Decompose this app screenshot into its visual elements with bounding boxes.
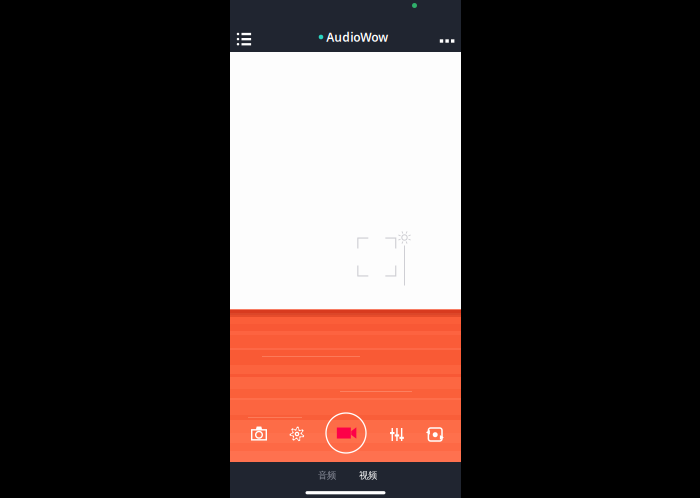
button[interactable]: 音频 — [313, 468, 341, 483]
button[interactable]: Menu — [231, 22, 257, 48]
staticText: 视频 — [359, 470, 377, 481]
button[interactable]: 视频 — [354, 468, 382, 483]
staticText: 音频 — [318, 470, 336, 481]
button[interactable]: Settings — [283, 412, 315, 454]
button[interactable]: Photo mode — [242, 412, 274, 454]
button[interactable]: Record — [325, 412, 367, 454]
button[interactable]: More options — [434, 22, 460, 48]
button[interactable]: Switch camera — [418, 412, 450, 454]
staticText: AudioWow — [326, 29, 388, 45]
button[interactable]: Adjustments — [376, 412, 408, 454]
button[interactable]: Camera preview, tap to focus — [230, 52, 461, 462]
